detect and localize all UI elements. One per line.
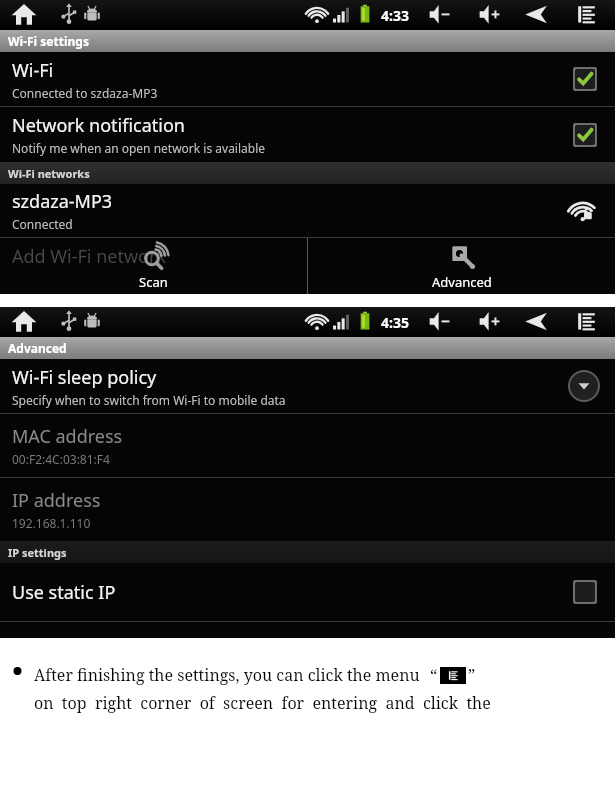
staticText: After finishing the settings, you can cl… [34, 664, 420, 686]
button[interactable]: Advanced [308, 238, 615, 294]
staticText: 4:33 [381, 6, 409, 25]
button[interactable]: IP address [0, 478, 615, 541]
staticText: MAC address [12, 424, 123, 449]
staticText: Connected to szdaza-MP3 [12, 85, 158, 101]
staticText: szdaza-MP3 [12, 189, 113, 214]
staticText: Network notification [12, 113, 185, 138]
button[interactable]: szdaza-MP3 [0, 184, 615, 237]
staticText: Wi-Fi sleep policy [12, 365, 157, 390]
staticText: Notify me when an open network is availa… [12, 140, 266, 156]
staticText: IP settings [8, 545, 67, 560]
staticText: Add Wi-Fi network [12, 244, 167, 269]
button[interactable]: Use static IP [569, 576, 601, 608]
staticText: IP address [12, 488, 101, 513]
button[interactable]: Open sleep policy options [567, 369, 601, 403]
staticText: Wi-Fi [12, 58, 54, 83]
staticText: Advanced [432, 273, 492, 291]
staticText: 00:F2:4C:03:81:F4 [12, 451, 110, 467]
button[interactable]: Network notification [569, 119, 601, 151]
staticText: Advanced [8, 340, 67, 356]
staticText: 4:35 [381, 313, 409, 332]
staticText: Specify when to switch from Wi-Fi to mob… [12, 392, 286, 408]
button[interactable]: Network notification [0, 107, 615, 162]
button[interactable]: Wi-Fi on [569, 63, 601, 95]
button[interactable]: Use static IP [0, 563, 615, 621]
button[interactable]: Wi-Fi [0, 52, 615, 106]
staticText: Connected [12, 216, 73, 232]
staticText: “ [430, 664, 438, 686]
staticText: 192.168.1.110 [12, 515, 91, 531]
staticText: ” [468, 664, 476, 686]
button[interactable]: Scan [0, 238, 307, 294]
button[interactable]: MAC address [0, 414, 615, 477]
staticText: Scan [139, 273, 168, 291]
staticText: Wi-Fi networks [8, 166, 90, 181]
button[interactable]: Secured network signal [567, 194, 601, 228]
staticText: Use static IP [12, 580, 116, 605]
staticText: on top right corner of screen for enteri… [34, 692, 491, 714]
staticText: Wi-Fi settings [8, 33, 89, 49]
button[interactable]: Wi-Fi sleep policy [0, 359, 615, 413]
